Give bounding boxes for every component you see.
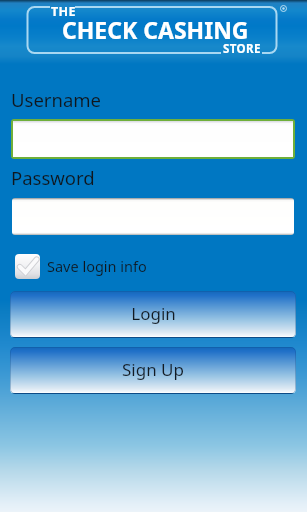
button[interactable]: Save login info bbox=[15, 252, 147, 280]
staticText: Sign Up bbox=[122, 358, 184, 381]
button[interactable] bbox=[13, 121, 293, 157]
staticText: Save login info bbox=[47, 256, 147, 276]
staticText: CHECK CASHING bbox=[62, 14, 249, 45]
button[interactable]: Sign Up bbox=[10, 347, 296, 394]
button[interactable]: Login bbox=[10, 291, 296, 338]
staticText: THE bbox=[51, 3, 76, 20]
staticText: Username bbox=[11, 87, 102, 112]
staticText: STORE bbox=[223, 41, 261, 57]
staticText: Login bbox=[131, 302, 176, 325]
staticText: Password bbox=[11, 165, 95, 190]
button[interactable] bbox=[12, 198, 294, 235]
